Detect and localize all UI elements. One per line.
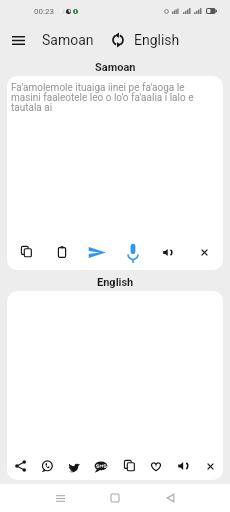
button[interactable]: English xyxy=(134,32,180,48)
staticText: Fa'amolemole ituaiga iinei pe fa'aoga le… xyxy=(11,82,203,113)
button[interactable]: Send SMS xyxy=(89,454,113,478)
button[interactable]: Samoan xyxy=(42,32,94,48)
staticText: English xyxy=(97,276,134,289)
button[interactable]: Home xyxy=(99,484,131,512)
button[interactable]: Speak xyxy=(171,454,195,478)
button[interactable]: Translate xyxy=(85,240,109,264)
button[interactable]: Voice input xyxy=(121,240,145,264)
button[interactable]: Share xyxy=(8,454,32,478)
button[interactable]: Recents xyxy=(44,484,76,512)
staticText: English xyxy=(134,32,180,48)
button[interactable]: Speak xyxy=(156,240,180,264)
button[interactable]: Back xyxy=(154,484,186,512)
button[interactable]: Add to favourites xyxy=(144,454,168,478)
button[interactable]: Copy xyxy=(117,454,141,478)
staticText: Samoan xyxy=(42,32,94,48)
button[interactable]: Menu xyxy=(8,30,28,50)
button[interactable]: Share on Twitter xyxy=(62,454,86,478)
button[interactable]: Paste xyxy=(50,240,74,264)
button[interactable]: Clear xyxy=(198,454,222,478)
button[interactable]: Clear xyxy=(192,240,216,264)
button[interactable]: Copy xyxy=(14,240,38,264)
button[interactable]: Swap languages xyxy=(110,32,126,48)
button[interactable]: Share on WhatsApp xyxy=(35,454,59,478)
staticText: 00:23 xyxy=(34,7,54,16)
staticText: Samoan xyxy=(95,61,136,74)
